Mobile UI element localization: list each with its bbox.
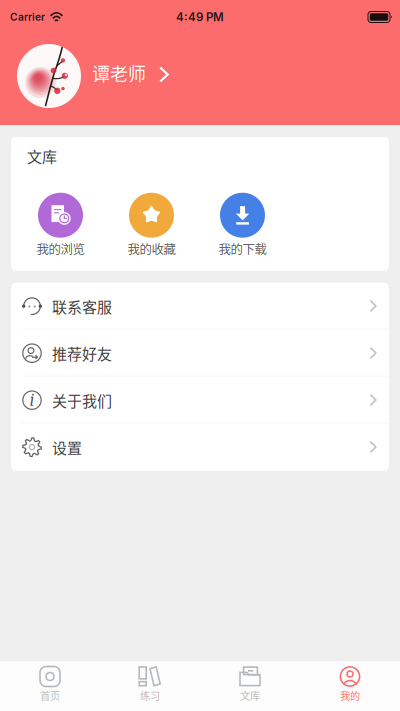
- staticText: 设置: [52, 436, 82, 458]
- staticText: Carrier: [10, 11, 45, 23]
- button[interactable]: i: [11, 377, 389, 424]
- button[interactable]: 我的浏览: [15, 193, 106, 258]
- staticText: 我的下载: [218, 240, 266, 258]
- button[interactable]: 谭老师: [0, 27, 400, 125]
- button[interactable]: 联系客服: [11, 283, 389, 330]
- staticText: 练习: [140, 688, 160, 703]
- staticText: 联系客服: [52, 295, 112, 317]
- staticText: 关于我们: [52, 389, 112, 411]
- button[interactable]: 设置: [11, 424, 389, 471]
- staticText: 文库: [240, 688, 260, 703]
- button[interactable]: 推荐好友: [11, 330, 389, 377]
- button[interactable]: 首页: [0, 661, 100, 711]
- button[interactable]: 文库: [200, 661, 300, 711]
- staticText: 文库: [27, 145, 57, 167]
- staticText: 我的: [340, 688, 360, 703]
- button[interactable]: 我的收藏: [106, 193, 197, 258]
- staticText: 首页: [40, 688, 60, 703]
- staticText: 推荐好友: [52, 342, 112, 364]
- button[interactable]: 我的下载: [197, 193, 288, 258]
- staticText: 4:49 PM: [176, 10, 224, 24]
- staticText: 谭老师: [92, 60, 146, 86]
- staticText: i: [29, 391, 34, 409]
- staticText: 我的收藏: [127, 240, 175, 258]
- staticText: 我的浏览: [36, 240, 84, 258]
- button[interactable]: 我的: [300, 661, 400, 711]
- button[interactable]: 练习: [100, 661, 200, 711]
